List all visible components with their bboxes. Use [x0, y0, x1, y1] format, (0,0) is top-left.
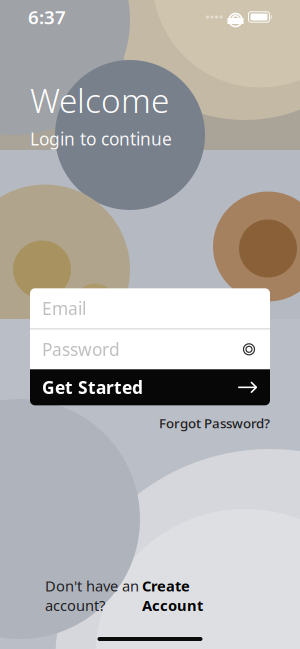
button[interactable]: Get Started	[30, 369, 270, 405]
staticText: Password	[42, 338, 120, 361]
button[interactable]: Email	[30, 288, 270, 328]
button[interactable]: Don't have an account?	[25, 570, 275, 621]
button[interactable]: Forgot Password?	[30, 405, 270, 432]
staticText: Get Started	[42, 376, 143, 399]
staticText: Login to continue	[30, 127, 172, 150]
staticText: 6:37	[28, 5, 66, 29]
staticText: Email	[42, 297, 86, 320]
staticText: Create Account	[142, 576, 203, 615]
staticText: Welcome	[30, 78, 169, 122]
staticText: Forgot Password?	[159, 414, 270, 432]
button[interactable]: Password	[30, 329, 270, 369]
staticText: Don't have an account?	[45, 576, 139, 615]
